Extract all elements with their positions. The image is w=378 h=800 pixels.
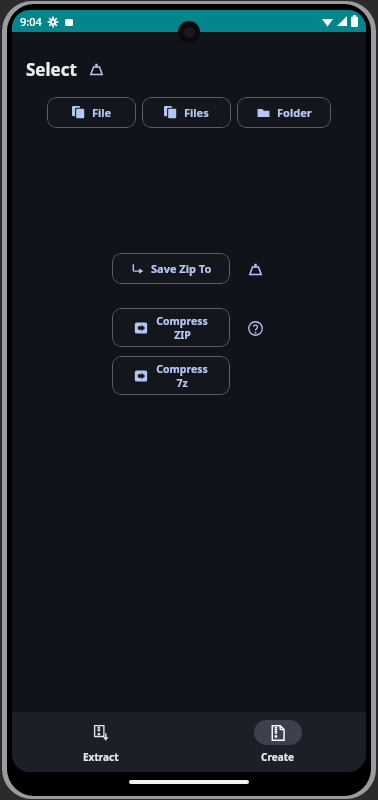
button[interactable]: Compress — [112, 308, 230, 347]
button[interactable]: Save Zip To — [112, 253, 230, 284]
button[interactable]: Folder — [237, 97, 331, 128]
staticText: Select — [26, 58, 77, 81]
staticText: Extract — [83, 750, 119, 764]
button[interactable]: File — [47, 97, 136, 128]
staticText: Folder — [277, 105, 312, 120]
staticText: Compress — [156, 314, 208, 328]
button[interactable]: Create — [189, 712, 366, 772]
staticText: Compress — [156, 362, 208, 376]
button[interactable]: Archive destination — [244, 258, 266, 280]
staticText: Create — [261, 750, 294, 764]
staticText: ZIP — [174, 328, 191, 342]
button[interactable]: Compress — [112, 356, 230, 395]
button[interactable]: Files — [142, 97, 231, 128]
staticText: File — [92, 105, 112, 120]
staticText: Files — [184, 105, 209, 120]
staticText: 7z — [176, 376, 188, 390]
button[interactable]: Extract — [12, 712, 189, 772]
staticText: 9:04 — [20, 14, 42, 29]
staticText: Save Zip To — [151, 261, 212, 276]
button[interactable]: Help — [244, 317, 266, 339]
